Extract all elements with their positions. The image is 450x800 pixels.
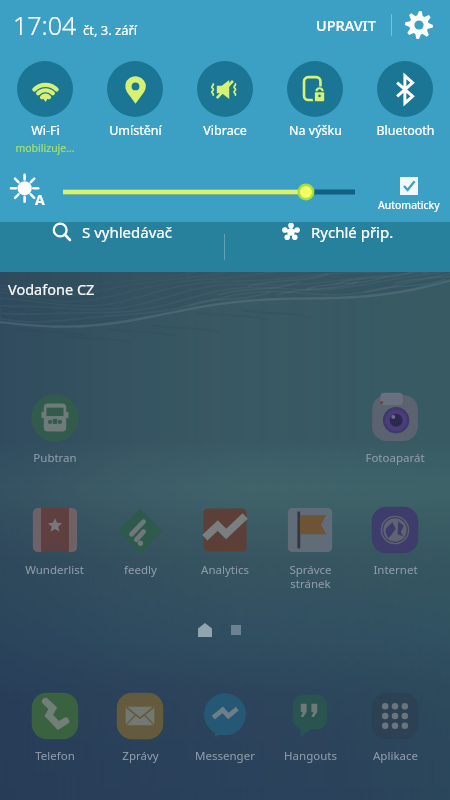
button[interactable]: Wi-Fi [0,61,90,155]
staticText: A [35,190,45,209]
staticText: 17:04 [13,8,77,42]
button[interactable]: Internet [367,502,423,578]
button[interactable]: Automaticky [378,177,440,212]
button[interactable]: Bluetooth [360,61,450,139]
button[interactable]: Umístění [90,61,180,139]
staticText: Aplikace [373,748,418,764]
staticText: Bluetooth [376,122,435,139]
staticText: Internet [373,562,418,578]
button[interactable]: UPRAVIT [313,9,379,41]
staticText: S vyhledávač [82,222,172,242]
button[interactable]: Vibrace [180,61,270,139]
staticText: Analytics [201,562,249,578]
staticText: feedly [124,562,157,578]
staticText: Telefon [35,748,75,764]
staticText: Automaticky [378,198,440,212]
button[interactable]: Brightness slider [63,178,355,206]
button[interactable]: Analytics [197,502,253,578]
staticText: Vodafone CZ [8,279,95,299]
other: Home page [198,623,212,637]
staticText: Správce stránek [289,562,332,591]
staticText: Messenger [195,748,255,764]
button[interactable]: Na výšku [270,61,360,139]
button[interactable]: Messenger [195,688,255,764]
staticText: Hangouts [284,748,337,764]
staticText: Wunderlist [25,562,84,578]
staticText: čt, 3. září [83,21,138,39]
staticText: Na výšku [289,122,342,139]
button[interactable]: Hangouts [282,688,338,764]
staticText: Umístění [109,122,162,139]
staticText: Zprávy [122,748,159,764]
button[interactable]: S vyhledávač [0,222,224,242]
staticText: Wi-Fi [31,122,60,139]
button[interactable]: Zprávy [112,688,168,764]
staticText: UPRAVIT [316,15,376,35]
button[interactable]: Settings [404,10,434,40]
button[interactable]: Aplikace [367,688,423,764]
button[interactable]: Fotoaparát [365,390,425,466]
button[interactable]: Wunderlist [25,502,84,578]
staticText: Pubtran [33,450,77,466]
staticText: Vibrace [203,122,247,139]
button[interactable]: Pubtran [27,390,83,466]
staticText: mobilizuje… [15,141,75,155]
button[interactable]: Rychlé přip. [225,222,450,242]
staticText: Fotoaparát [365,450,425,466]
button[interactable]: Auto brightness [10,174,44,208]
button[interactable]: Telefon [27,688,83,764]
button[interactable]: Správce stránek [282,502,338,591]
button[interactable]: feedly [112,502,168,578]
staticText: Rychlé přip. [311,222,394,242]
